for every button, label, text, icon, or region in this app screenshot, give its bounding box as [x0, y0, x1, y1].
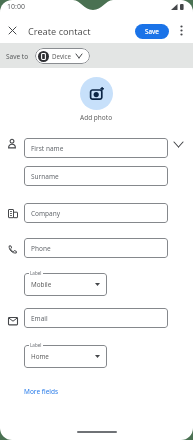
staticText: Add photo: [80, 113, 113, 122]
button[interactable]: Device: [35, 48, 90, 64]
button[interactable]: Phone: [24, 238, 168, 258]
button[interactable]: [171, 137, 185, 152]
staticText: Save: [145, 27, 159, 36]
button[interactable]: Save: [135, 24, 169, 39]
staticText: Home: [31, 352, 49, 361]
staticText: Label: [30, 270, 42, 276]
staticText: Company: [31, 209, 61, 218]
button[interactable]: Home: [24, 345, 107, 368]
staticText: Mobile: [31, 280, 52, 289]
button[interactable]: Company: [24, 203, 168, 223]
staticText: Email: [31, 314, 48, 323]
button[interactable]: [176, 24, 186, 37]
staticText: Device: [52, 52, 72, 60]
button[interactable]: Email: [24, 308, 168, 328]
staticText: First name: [31, 144, 64, 153]
staticText: Surname: [31, 172, 59, 181]
staticText: Create contact: [28, 25, 91, 38]
button[interactable]: [80, 77, 113, 110]
staticText: 10:00: [7, 2, 25, 12]
button[interactable]: [5, 23, 19, 37]
button[interactable]: More fields: [20, 383, 63, 400]
staticText: More fields: [24, 387, 59, 396]
button[interactable]: Mobile: [24, 273, 107, 296]
button[interactable]: First name: [24, 138, 168, 158]
staticText: Label: [30, 342, 42, 348]
staticText: Phone: [31, 244, 51, 253]
staticText: Save to: [6, 52, 29, 61]
button[interactable]: Surname: [24, 166, 168, 186]
